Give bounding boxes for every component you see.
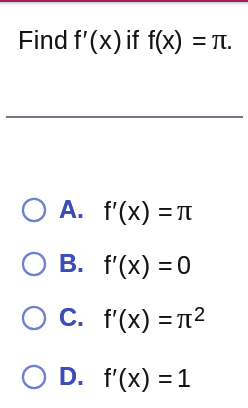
staticText: π (177, 193, 193, 226)
staticText: B. (59, 249, 84, 277)
staticText: = (192, 26, 207, 54)
staticText: f′(x) (104, 364, 152, 392)
staticText: = (158, 364, 173, 392)
staticText: π (212, 22, 228, 55)
staticText: = (158, 251, 173, 279)
staticText: A. (59, 195, 84, 223)
staticText: D. (59, 362, 84, 390)
staticText: f′(x) (104, 197, 152, 225)
staticText: = (158, 364, 173, 392)
staticText: 2 (194, 303, 206, 325)
staticText: f′(x) (104, 305, 152, 333)
staticText: f′(x) (104, 197, 152, 225)
staticText: f′(x) (74, 26, 124, 54)
staticText: 2 (194, 303, 206, 325)
button[interactable] (0, 294, 248, 342)
staticText: f′(x) (104, 251, 152, 279)
button[interactable]: Select option D. (21, 364, 47, 390)
staticText: 1 (177, 364, 191, 392)
staticText: f (132, 26, 139, 54)
staticText: Find (18, 26, 69, 54)
staticText: π (177, 193, 193, 226)
button[interactable] (0, 186, 248, 234)
staticText: = (158, 197, 173, 225)
staticText: B. (59, 249, 84, 277)
staticText: Find (18, 26, 69, 54)
staticText: = (158, 305, 173, 333)
staticText: = (158, 251, 173, 279)
staticText: f (132, 26, 139, 54)
staticText: = (158, 197, 173, 225)
button[interactable]: Select option A. (21, 197, 47, 223)
staticText: f′(x) (74, 26, 124, 54)
staticText: i (126, 26, 132, 54)
staticText: π (177, 301, 193, 334)
staticText: . (226, 26, 233, 54)
staticText: π (212, 22, 228, 55)
button[interactable] (0, 240, 248, 288)
staticText: D. (59, 362, 84, 390)
staticText: f′(x) (104, 305, 152, 333)
staticText: f′(x) (104, 364, 152, 392)
staticText: f(x) (148, 26, 183, 54)
staticText: f(x) (148, 26, 183, 54)
staticText: 0 (177, 251, 191, 279)
staticText: C. (59, 303, 84, 331)
staticText: f′(x) (104, 251, 152, 279)
staticText: 0 (177, 251, 191, 279)
staticText: A. (59, 195, 84, 223)
staticText: . (226, 26, 233, 54)
staticText: = (192, 26, 207, 54)
button[interactable]: Select option C. (21, 305, 47, 331)
staticText: 1 (177, 364, 191, 392)
staticText: = (158, 305, 173, 333)
staticText: C. (59, 303, 84, 331)
staticText: π (177, 301, 193, 334)
button[interactable] (0, 353, 248, 401)
staticText: i (126, 26, 132, 54)
button[interactable]: Select option B. (21, 251, 47, 277)
